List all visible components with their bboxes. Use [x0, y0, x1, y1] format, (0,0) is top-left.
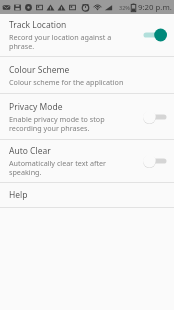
button[interactable]: Auto Clear — [0, 140, 174, 182]
button[interactable]: Colour Scheme — [0, 57, 174, 93]
staticText: Help — [9, 189, 28, 201]
staticText: Colour scheme for the application — [9, 77, 124, 87]
staticText: Enable privacy mode to stop recording yo… — [9, 114, 138, 133]
button[interactable]: Toggle on — [142, 27, 168, 43]
button[interactable]: Help — [0, 183, 174, 207]
staticText: 9:20 p.m. — [138, 2, 172, 13]
staticText: Record your location against a phrase. — [9, 32, 138, 51]
button[interactable]: Privacy Mode — [0, 94, 174, 139]
button[interactable]: Track Location — [0, 14, 174, 56]
staticText: 32% — [119, 4, 130, 11]
staticText: Auto Clear — [9, 145, 51, 157]
button[interactable]: Toggle off — [142, 109, 168, 125]
staticText: Automatically clear text after speaking. — [9, 158, 138, 177]
staticText: Track Location — [9, 19, 67, 31]
staticText: Colour Scheme — [9, 64, 70, 76]
button[interactable]: Toggle off — [142, 153, 168, 169]
staticText: Privacy Mode — [9, 101, 63, 113]
